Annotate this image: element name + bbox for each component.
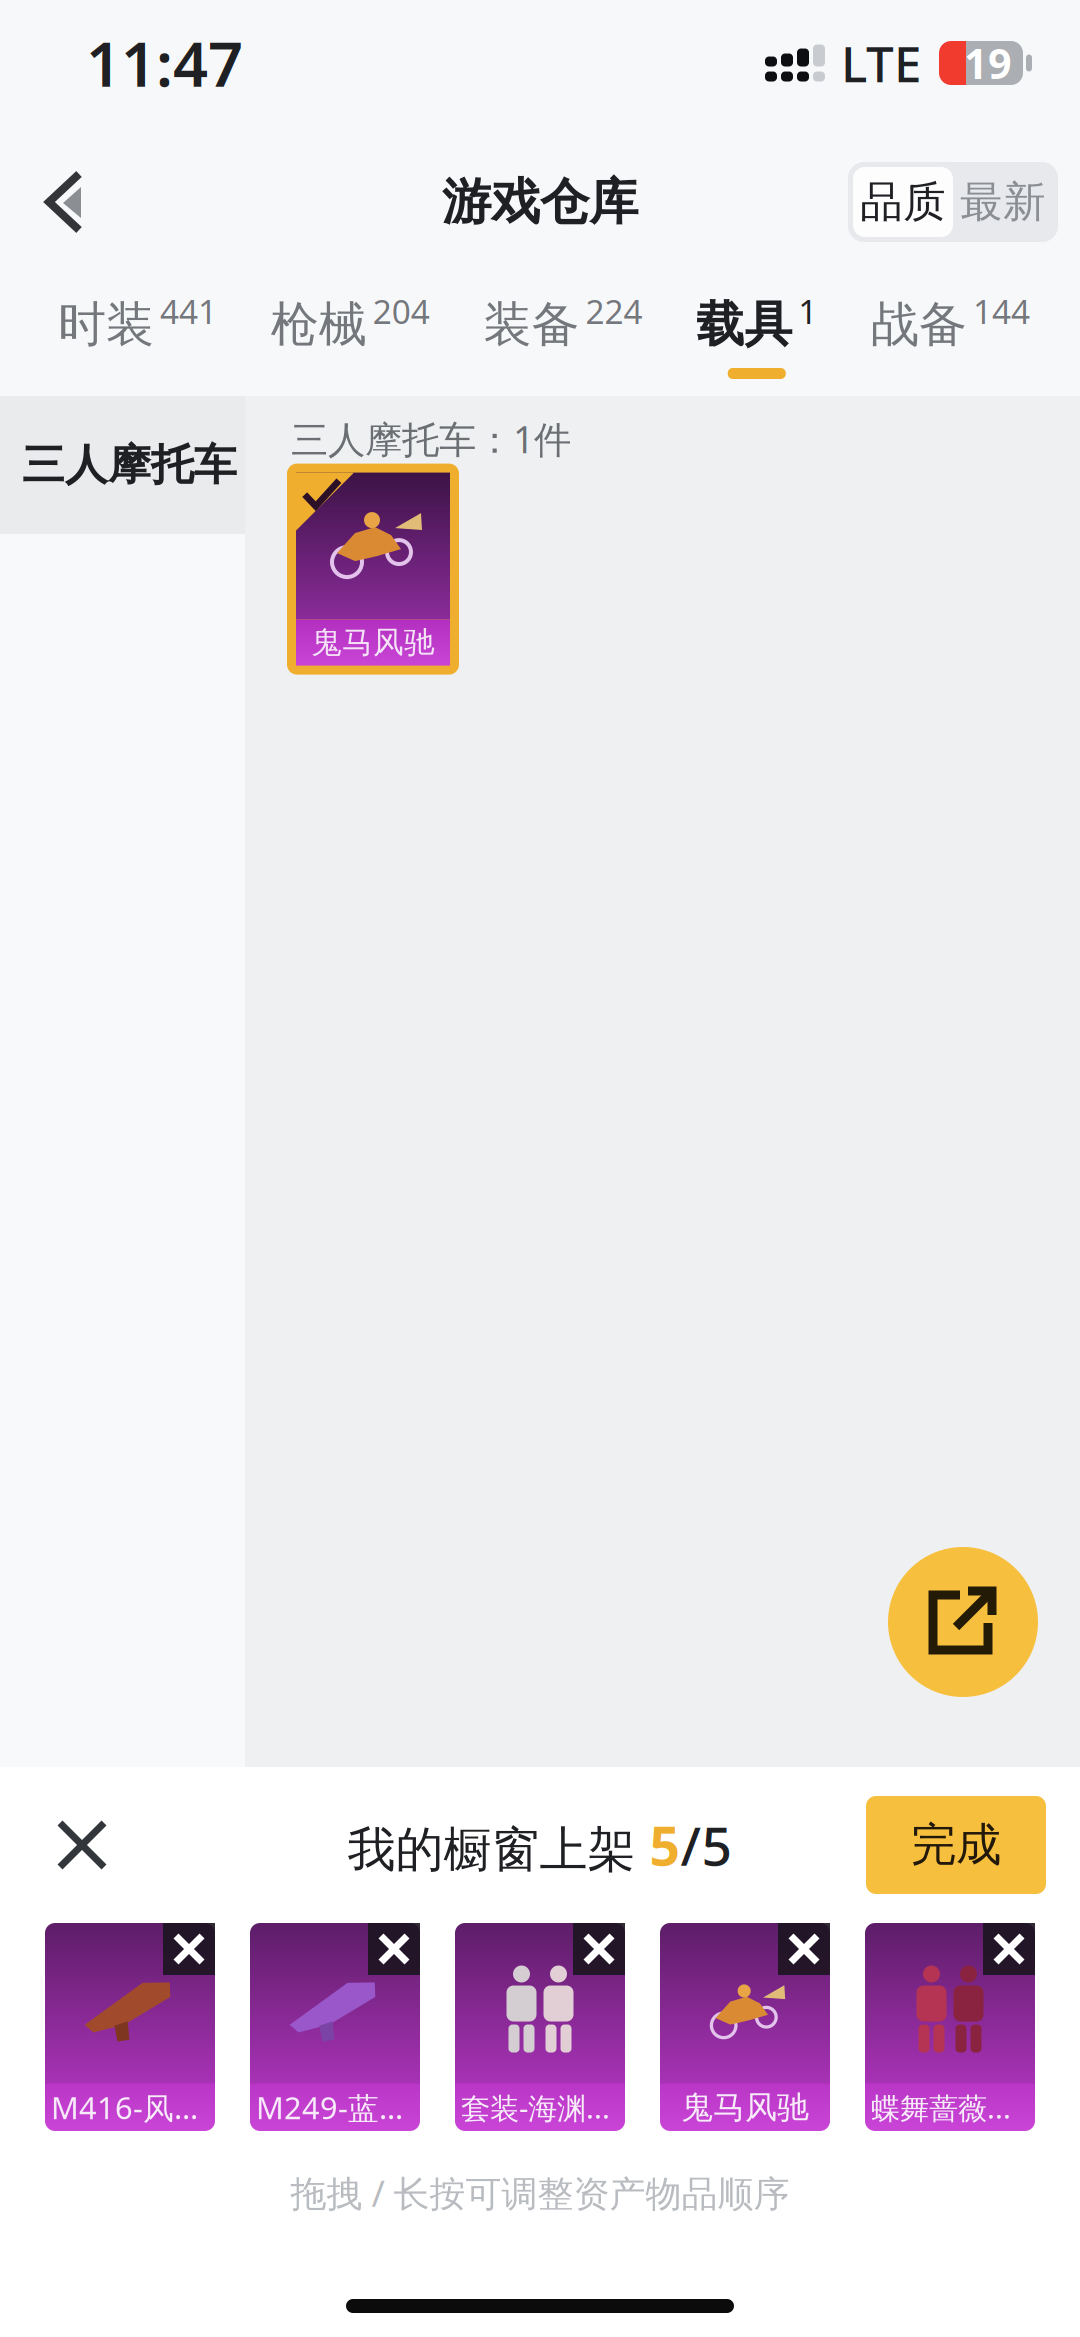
staticText: 鬼马风驰 <box>681 2088 809 2127</box>
staticText: 5 <box>649 1810 680 1880</box>
staticText: 441 <box>160 289 217 333</box>
staticText: M249-蓝莓… <box>256 2087 414 2128</box>
button[interactable]: 品质 <box>853 167 953 237</box>
staticText: 装备 <box>483 295 579 354</box>
staticText: 时装 <box>58 295 154 354</box>
button[interactable]: Remove <box>778 1923 830 1975</box>
staticText: 完成 <box>911 1817 1001 1873</box>
button[interactable]: 完成 <box>866 1796 1046 1894</box>
staticText: 144 <box>973 289 1030 333</box>
button[interactable]: 鬼马风驰 <box>287 464 459 675</box>
button[interactable]: 枪械 <box>271 295 430 379</box>
staticText: 204 <box>373 289 430 333</box>
button[interactable]: 时装 <box>58 295 217 379</box>
button[interactable]: 战备 <box>871 295 1030 379</box>
staticText: 枪械 <box>271 295 367 354</box>
staticText: 蝶舞蔷薇套装 <box>871 2088 1029 2127</box>
button[interactable]: 最新 <box>953 167 1053 237</box>
button[interactable]: Remove <box>368 1923 420 1975</box>
staticText: M416-风花… <box>51 2087 209 2128</box>
button[interactable]: Remove <box>163 1923 215 1975</box>
staticText: 品质 <box>860 176 946 228</box>
staticText: 套装-海渊国主 <box>461 2088 619 2127</box>
staticText: 战备 <box>871 295 967 354</box>
staticText: 鬼马风驰 <box>311 624 435 661</box>
button[interactable]: 装备 <box>483 295 642 379</box>
staticText: 拖拽 / 长按可调整资产物品顺序 <box>290 2169 789 2217</box>
staticText: 我的橱窗上架 <box>347 1820 649 1879</box>
button[interactable]: Back <box>18 147 110 257</box>
staticText: 19 <box>964 36 1012 90</box>
staticText: 11:47 <box>86 22 243 104</box>
staticText: 最新 <box>960 176 1046 228</box>
staticText: 三人摩托车 <box>22 439 237 491</box>
button[interactable]: Close <box>28 1791 136 1899</box>
button[interactable]: Remove <box>983 1923 1035 1975</box>
button[interactable]: 三人摩托车 <box>0 396 245 534</box>
staticText: 1 <box>798 289 817 333</box>
staticText: 三人摩托车：1件 <box>291 414 571 464</box>
button[interactable]: Remove <box>573 1923 625 1975</box>
staticText: /5 <box>680 1810 732 1880</box>
staticText: 游戏仓库 <box>442 172 638 232</box>
staticText: LTE <box>841 30 921 96</box>
button[interactable]: Share <box>888 1547 1038 1697</box>
staticText: 224 <box>585 289 642 333</box>
staticText: 载具 <box>696 295 792 354</box>
button[interactable]: 载具 <box>696 295 817 379</box>
